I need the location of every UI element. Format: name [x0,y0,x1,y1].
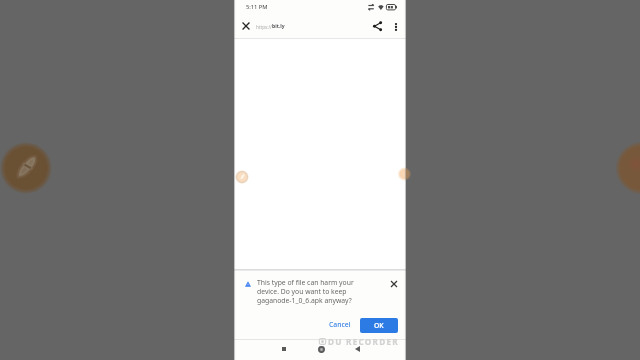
staticText: bit.ly [272,23,285,30]
button[interactable]: Recents [276,341,292,357]
button[interactable]: More options [386,17,406,37]
button[interactable]: Share [367,16,387,36]
button[interactable]: OK [360,318,398,333]
button[interactable]: Close [236,16,256,36]
button[interactable]: Cancel [325,317,355,332]
staticText: OK [374,321,384,330]
staticText: Cancel [329,320,351,329]
button[interactable]: Dismiss [386,276,402,292]
button[interactable]: Home [313,341,329,357]
staticText: 5:11 PM [246,3,268,11]
button[interactable]: Back [349,341,365,357]
staticText: DU RECORDER [328,336,399,347]
staticText: https:// [256,24,272,30]
staticText: This type of file can harm your device. … [257,278,355,305]
